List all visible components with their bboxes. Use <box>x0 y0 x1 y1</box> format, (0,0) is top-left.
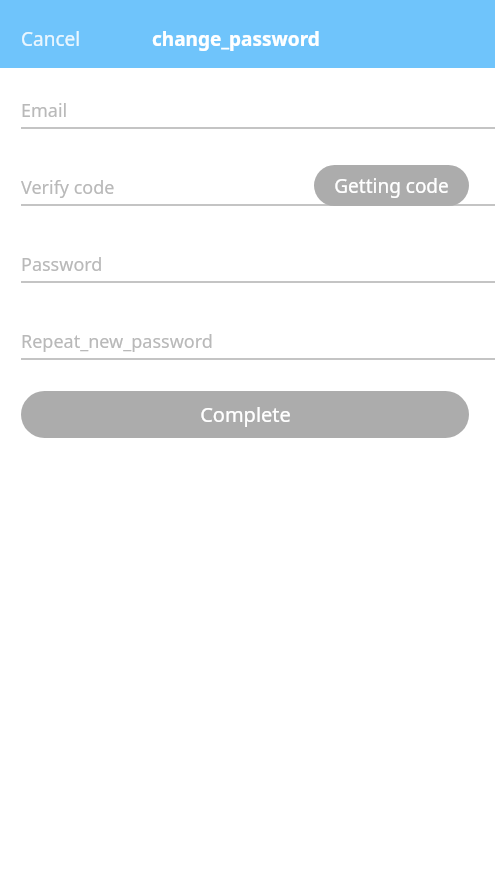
button[interactable]: Cancel <box>0 18 97 60</box>
staticText: Complete <box>200 401 291 428</box>
button[interactable]: Getting code <box>314 165 469 206</box>
button[interactable]: Complete <box>21 391 469 438</box>
staticText: change_password <box>152 26 320 52</box>
staticText: Password <box>21 252 103 277</box>
staticText: Repeat_new_password <box>21 329 213 354</box>
staticText: Verify code <box>21 175 115 200</box>
staticText: Email <box>21 98 68 123</box>
staticText: Cancel <box>21 26 81 52</box>
staticText: Getting code <box>334 173 449 199</box>
